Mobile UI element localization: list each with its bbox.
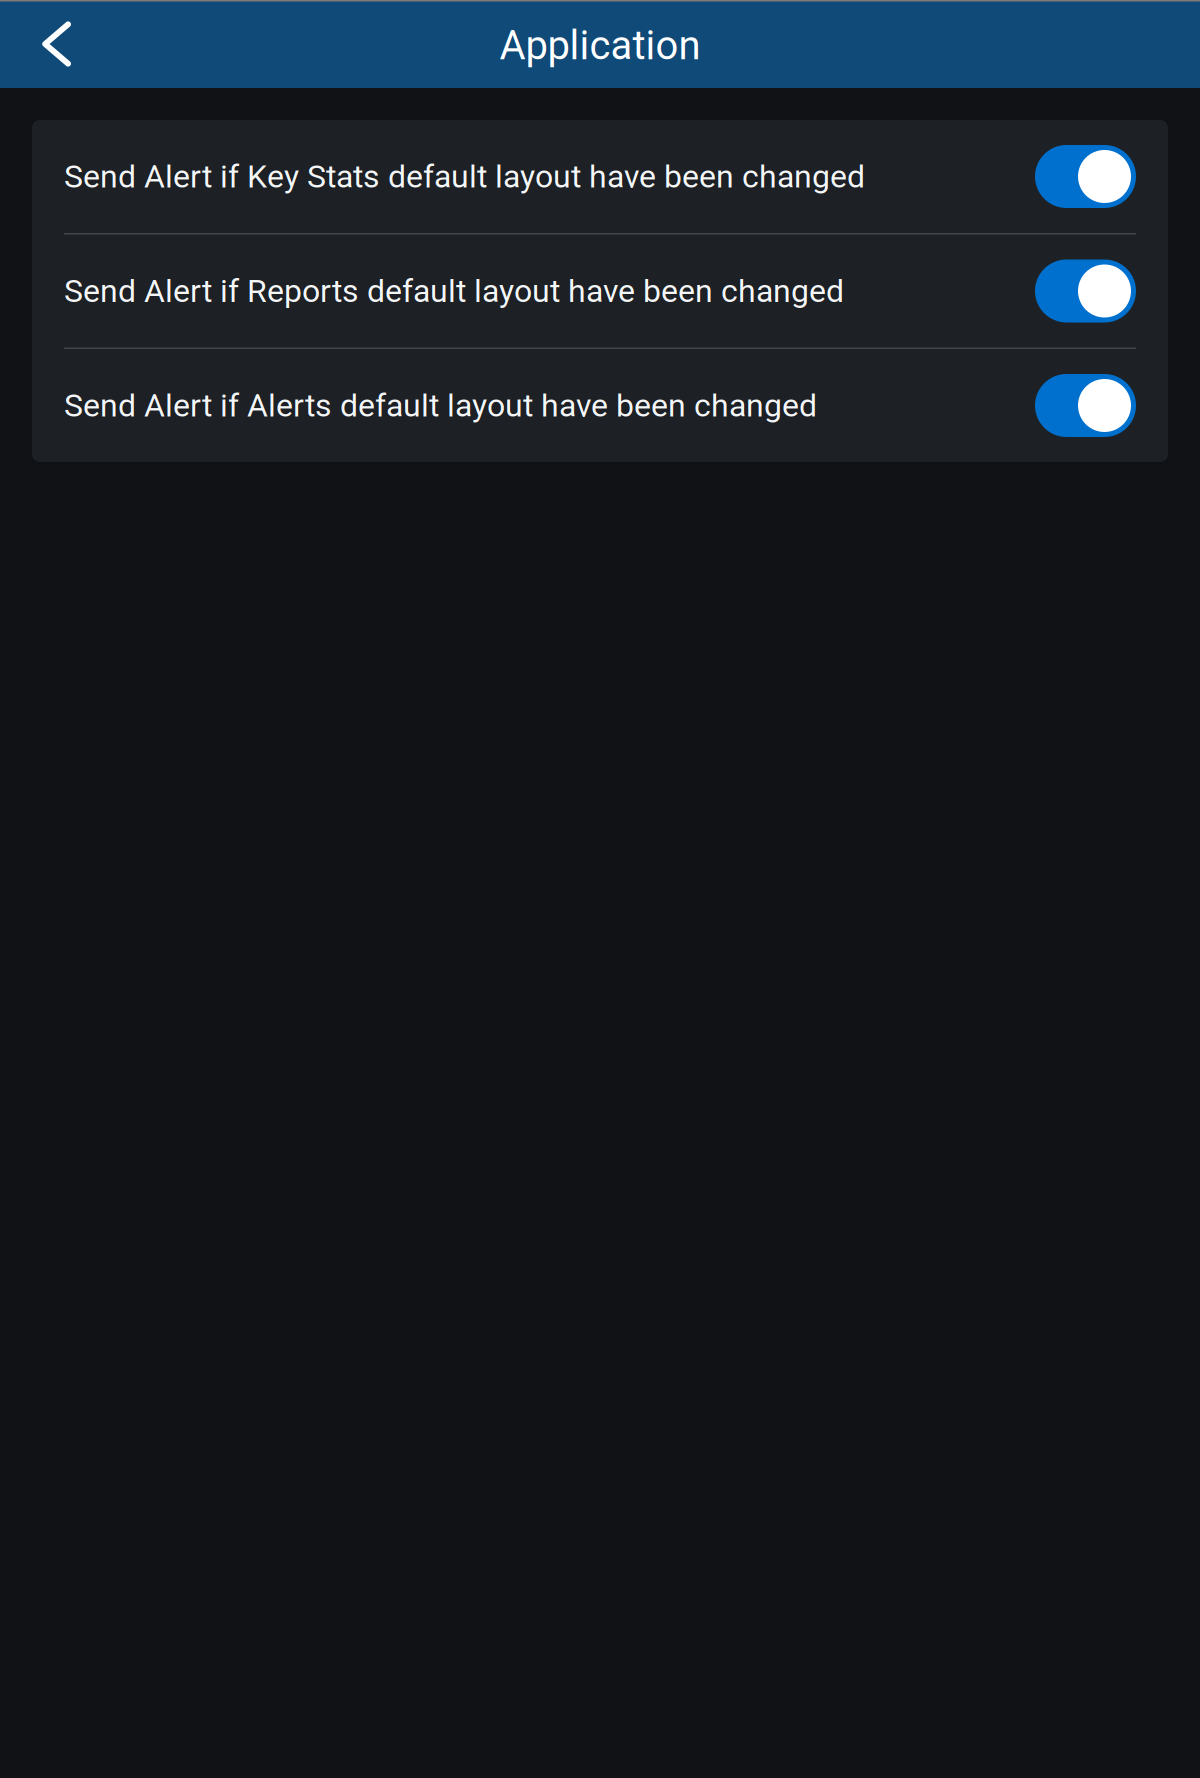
button[interactable]: Send Alert if Key Stats default layout h… <box>32 120 1168 233</box>
staticText: Send Alert if Reports default layout hav… <box>64 272 844 310</box>
button[interactable]: Send Alert if Reports default layout hav… <box>32 234 1168 347</box>
staticText: Send Alert if Key Stats default layout h… <box>64 158 865 195</box>
staticText: Application <box>499 22 700 69</box>
button[interactable]: Send Alert if Alerts default layout have… <box>32 349 1168 462</box>
staticText: Send Alert if Alerts default layout have… <box>64 387 817 424</box>
button[interactable]: Back <box>0 0 108 88</box>
